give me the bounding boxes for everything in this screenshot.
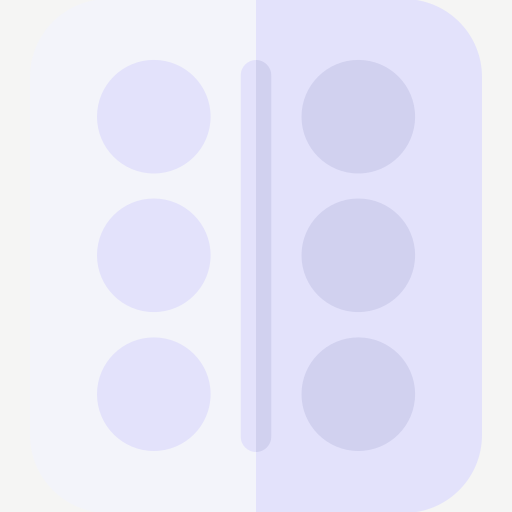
button[interactable]: Medication blister pack [0, 0, 512, 512]
